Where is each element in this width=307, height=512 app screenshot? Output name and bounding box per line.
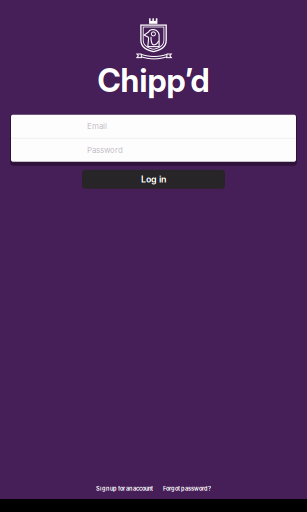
staticText: Chipp’d [97, 61, 209, 100]
button[interactable]: Sign up for an account [96, 485, 153, 492]
staticText: Forgot password? [163, 485, 211, 492]
staticText: Email [87, 121, 107, 131]
staticText: Log in [141, 174, 166, 184]
button[interactable]: Log in [82, 170, 225, 189]
staticText: Password [87, 145, 123, 155]
staticText: Sign up for an account [96, 485, 153, 492]
button[interactable]: Forgot password? [163, 485, 211, 492]
